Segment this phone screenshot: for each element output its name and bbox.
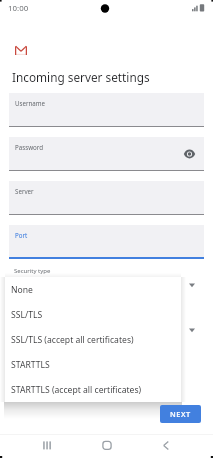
button[interactable]: STARTTLS (accept all certificates) <box>5 377 181 402</box>
staticText: Incoming server settings <box>12 69 150 85</box>
button[interactable]: NEXT <box>160 405 201 423</box>
button[interactable]: Server <box>9 181 204 215</box>
staticText: SSL/TLS <box>11 309 43 321</box>
button[interactable]: Back <box>151 433 181 458</box>
button[interactable]: Recent apps <box>32 433 62 458</box>
staticText: SSL/TLS (accept all certificates) <box>11 334 134 346</box>
button[interactable]: Port <box>9 225 204 259</box>
button[interactable]: SSL/TLS (accept all certificates) <box>5 327 181 352</box>
staticText: NEXT <box>170 409 191 419</box>
button[interactable]: Username <box>9 93 204 127</box>
button[interactable]: Password <box>9 137 204 171</box>
staticText: STARTTLS (accept all certificates) <box>11 384 142 396</box>
staticText: Port <box>15 231 28 239</box>
staticText: 10:00 <box>8 3 29 14</box>
staticText: Username <box>15 99 46 107</box>
staticText: STARTTLS <box>11 359 50 371</box>
button[interactable]: SSL/TLS <box>5 302 181 327</box>
button[interactable]: Show password <box>182 147 196 161</box>
button[interactable]: Home <box>92 433 122 458</box>
button[interactable]: None <box>5 277 181 302</box>
staticText: Security type <box>14 267 51 275</box>
button[interactable]: STARTTLS <box>5 352 181 377</box>
staticText: None <box>11 284 33 296</box>
staticText: Password <box>15 143 43 151</box>
staticText: Server <box>15 187 34 195</box>
